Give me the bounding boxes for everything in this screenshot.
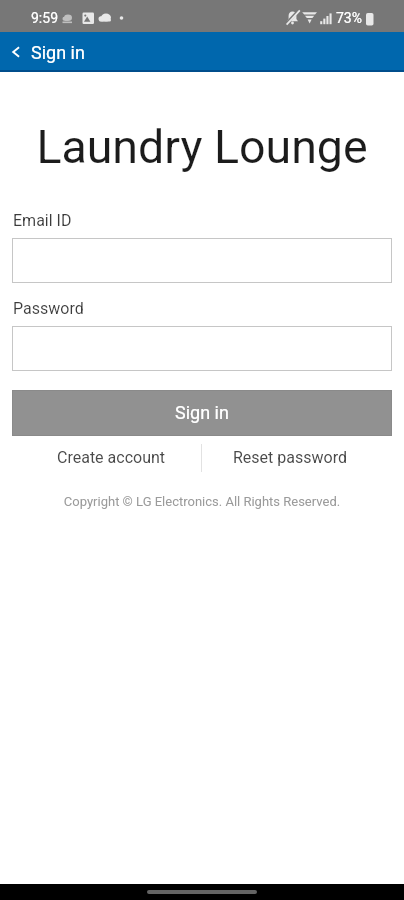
staticText: Password xyxy=(13,299,84,318)
button[interactable]: Back xyxy=(2,38,30,66)
staticText: Create account xyxy=(57,448,166,467)
staticText: 73% xyxy=(336,10,362,26)
staticText: 9:59 xyxy=(31,10,58,26)
staticText: Copyright © LG Electronics. All Rights R… xyxy=(0,494,404,509)
button[interactable]: Reset password xyxy=(201,439,379,475)
staticText: Reset password xyxy=(233,448,347,467)
staticText: Sign in xyxy=(31,42,85,63)
button[interactable]: Sign in xyxy=(12,390,392,436)
staticText: Sign in xyxy=(175,402,229,423)
button[interactable]: Email ID input field xyxy=(12,238,392,283)
staticText: Laundry Lounge xyxy=(0,120,404,174)
button[interactable]: Password input field xyxy=(12,326,392,371)
staticText: Email ID xyxy=(13,211,72,230)
button[interactable]: Create account xyxy=(22,439,200,475)
